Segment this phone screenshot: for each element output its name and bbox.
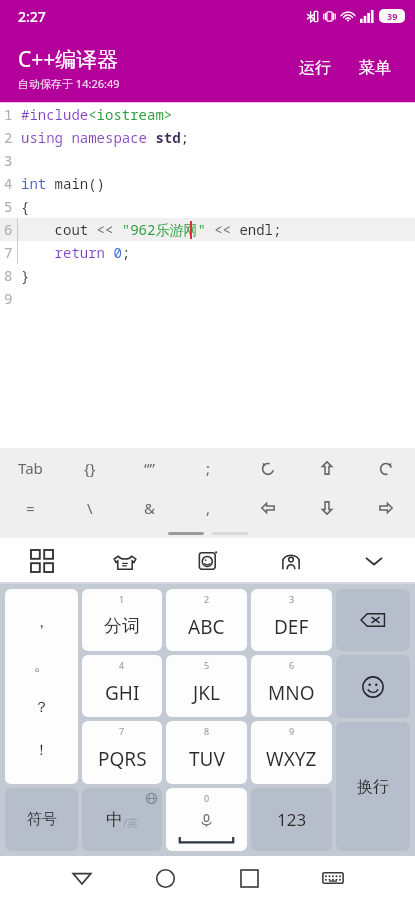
button[interactable]: 0 bbox=[166, 788, 247, 851]
staticText: int main() bbox=[21, 174, 105, 193]
staticText: MNO bbox=[268, 680, 315, 706]
button[interactable]: 7 bbox=[82, 721, 162, 784]
button[interactable]: Account bbox=[249, 538, 332, 584]
staticText: “” bbox=[144, 458, 155, 478]
staticText: 分词 bbox=[104, 615, 140, 638]
staticText: 2:27 bbox=[18, 7, 46, 26]
button[interactable]: 运行 bbox=[289, 52, 341, 84]
button[interactable]: Themes bbox=[83, 538, 166, 584]
staticText: 换行 bbox=[357, 777, 389, 797]
button[interactable]: 5 bbox=[166, 655, 247, 717]
button[interactable]: up bbox=[297, 448, 356, 488]
staticText: 菜单 bbox=[359, 58, 391, 78]
staticText: , bbox=[206, 498, 211, 518]
button[interactable]: = bbox=[0, 488, 60, 528]
staticText: 5 bbox=[4, 197, 13, 216]
staticText: ， bbox=[34, 613, 49, 632]
staticText: 8 bbox=[204, 725, 210, 737]
button[interactable]: Tab bbox=[0, 448, 60, 488]
button[interactable]: 6 bbox=[251, 655, 332, 717]
staticText: 4 bbox=[4, 174, 13, 193]
staticText: 中 bbox=[106, 809, 123, 830]
staticText: /英 bbox=[123, 815, 139, 830]
staticText: #include<iostream> bbox=[21, 105, 173, 124]
staticText: GHI bbox=[105, 680, 140, 706]
button[interactable]: , bbox=[179, 488, 238, 528]
staticText: 6 bbox=[289, 659, 295, 671]
button[interactable]: 换行 bbox=[336, 722, 410, 851]
button[interactable]: Recents bbox=[207, 856, 291, 900]
staticText: ABC bbox=[188, 614, 225, 640]
staticText: 自动保存于 14:26:49 bbox=[18, 76, 120, 91]
staticText: & bbox=[144, 498, 155, 518]
button[interactable]: Home bbox=[123, 856, 207, 900]
staticText: TUV bbox=[189, 746, 225, 772]
staticText: 4 bbox=[119, 659, 125, 671]
button[interactable]: 4 bbox=[82, 655, 162, 717]
staticText: Tab bbox=[18, 458, 43, 478]
button[interactable]: {} bbox=[60, 448, 120, 488]
button[interactable]: 符号 bbox=[5, 788, 78, 851]
staticText: 7 bbox=[119, 725, 125, 737]
button[interactable]: Switch keyboard bbox=[291, 856, 375, 900]
staticText: 7 bbox=[4, 243, 13, 262]
button[interactable]: down bbox=[297, 488, 356, 528]
staticText: cout << "962乐游网" << endl; bbox=[21, 220, 282, 239]
staticText: using namespace std; bbox=[21, 128, 189, 147]
button[interactable]: right bbox=[356, 488, 415, 528]
button[interactable]: 1 bbox=[82, 589, 162, 651]
button[interactable]: & bbox=[120, 488, 179, 528]
button[interactable]: ; bbox=[179, 448, 238, 488]
button[interactable]: undo bbox=[238, 448, 297, 488]
staticText: DEF bbox=[274, 614, 309, 640]
staticText: {} bbox=[84, 458, 96, 478]
staticText: } bbox=[21, 266, 30, 285]
staticText: 123 bbox=[277, 808, 307, 831]
staticText: ！ bbox=[34, 741, 49, 760]
staticText: ？ bbox=[34, 698, 49, 717]
staticText: 。 bbox=[34, 656, 49, 675]
staticText: = bbox=[26, 498, 35, 518]
button[interactable]: Back bbox=[40, 856, 123, 900]
staticText: 符号 bbox=[27, 810, 57, 829]
button[interactable]: Keyboard layouts bbox=[0, 538, 83, 584]
staticText: ; bbox=[206, 458, 211, 478]
staticText: return 0; bbox=[21, 243, 131, 262]
button[interactable]: 8 bbox=[166, 721, 247, 784]
staticText: 6 bbox=[4, 220, 13, 239]
button[interactable]: left bbox=[238, 488, 297, 528]
staticText: JKL bbox=[193, 680, 220, 706]
staticText: 2 bbox=[204, 593, 210, 605]
staticText: 2 bbox=[4, 128, 13, 147]
staticText: WXYZ bbox=[266, 746, 317, 772]
button[interactable]: 3 bbox=[251, 589, 332, 651]
staticText: 1 bbox=[119, 593, 125, 605]
staticText: PQRS bbox=[98, 746, 147, 772]
staticText: 3 bbox=[289, 593, 295, 605]
staticText: 5 bbox=[204, 659, 210, 671]
staticText: C++编译器 bbox=[18, 45, 119, 74]
button[interactable]: Backspace bbox=[336, 589, 410, 651]
staticText: 3 bbox=[4, 151, 13, 170]
staticText: \ bbox=[87, 498, 93, 518]
staticText: 9 bbox=[4, 289, 13, 308]
button[interactable]: ， bbox=[5, 589, 78, 784]
button[interactable]: 菜单 bbox=[349, 52, 401, 84]
button[interactable]: Emoji bbox=[336, 655, 410, 718]
button[interactable]: 2 bbox=[166, 589, 247, 651]
staticText: 1 bbox=[4, 105, 13, 124]
staticText: 9 bbox=[289, 725, 295, 737]
button[interactable]: 9 bbox=[251, 721, 332, 784]
button[interactable]: redo bbox=[356, 448, 415, 488]
staticText: { bbox=[21, 197, 30, 216]
staticText: 8 bbox=[4, 266, 13, 285]
button[interactable]: \ bbox=[60, 488, 120, 528]
button[interactable]: Hide keyboard bbox=[332, 538, 415, 584]
staticText: 0 bbox=[204, 792, 210, 804]
button[interactable]: 123 bbox=[251, 788, 332, 851]
button[interactable]: “” bbox=[120, 448, 179, 488]
staticText: 39 bbox=[387, 10, 398, 22]
staticText: 运行 bbox=[299, 58, 331, 78]
button[interactable]: Stickers bbox=[166, 538, 249, 584]
button[interactable]: 中 bbox=[82, 788, 162, 851]
